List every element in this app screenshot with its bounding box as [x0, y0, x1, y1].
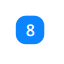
- button[interactable]: 8 unread: [16, 16, 44, 44]
- staticText: 8: [26, 19, 35, 40]
